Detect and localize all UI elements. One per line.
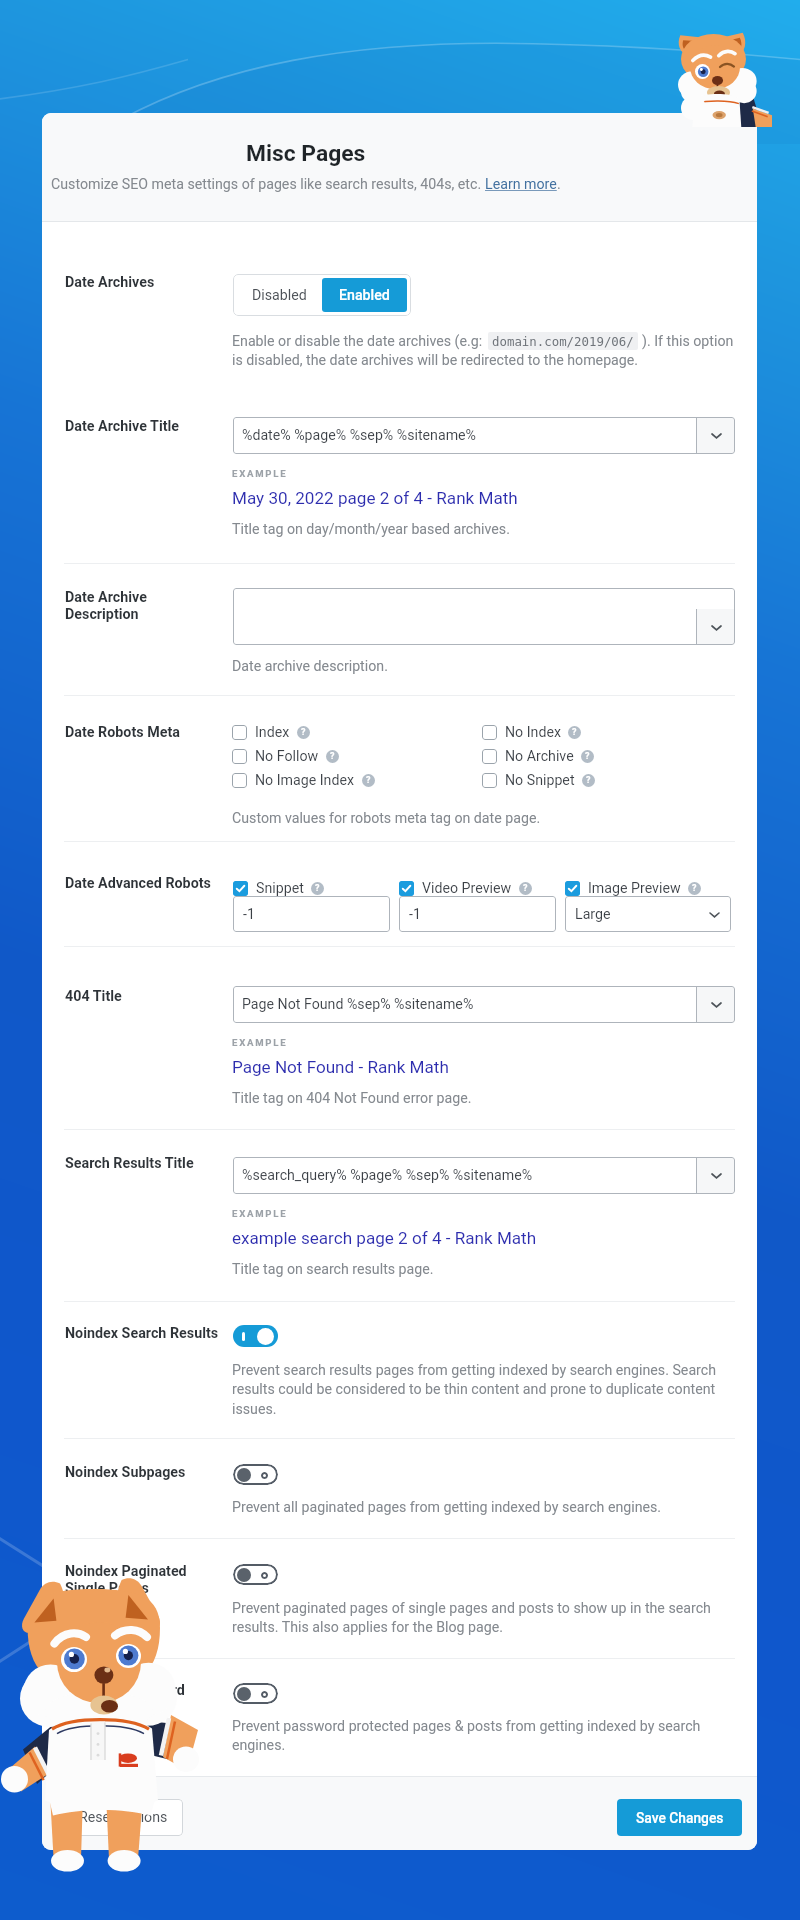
staticText: domain.com/2019/06/ xyxy=(492,334,634,348)
staticText: . xyxy=(557,176,561,193)
staticText: Date archive description. xyxy=(232,658,388,675)
staticText: ? xyxy=(585,751,590,762)
staticText: Snippet xyxy=(256,880,304,897)
staticText: ? xyxy=(523,883,528,894)
button[interactable]: %search_query% %page% %sep% %sitename% xyxy=(233,1157,735,1194)
button[interactable]: -1 xyxy=(233,896,390,932)
staticText: is disabled, the date archives will be r… xyxy=(232,352,639,369)
staticText: Reset Options xyxy=(79,1809,168,1826)
staticText: Title tag on 404 Not Found error page. xyxy=(232,1090,472,1107)
staticText: Customize SEO meta settings of pages lik… xyxy=(51,176,485,193)
staticText: Index xyxy=(255,724,290,741)
button[interactable]: No Snippet xyxy=(482,768,595,792)
staticText: ? xyxy=(366,775,371,786)
staticText: Title tag on search results page. xyxy=(232,1261,434,1278)
button[interactable]: No Index xyxy=(482,720,581,744)
staticText: ? xyxy=(572,727,577,738)
staticText: ? xyxy=(586,775,591,786)
button[interactable]: Snippet xyxy=(233,876,324,900)
staticText: example search page 2 of 4 - Rank Math xyxy=(232,1228,537,1248)
staticText: ? xyxy=(692,883,697,894)
staticText: Noindex Paginated Single Pages xyxy=(65,1563,187,1597)
staticText: Prevent search results pages from gettin… xyxy=(232,1362,717,1418)
button[interactable]: No Image Index xyxy=(232,768,375,792)
staticText: No Follow xyxy=(255,748,319,765)
staticText: Date Archives xyxy=(65,274,155,291)
button[interactable]: No Archive xyxy=(482,744,594,768)
staticText: Enabled xyxy=(339,287,390,304)
staticText: Date Archive Title xyxy=(65,418,180,435)
button[interactable]: Save Changes xyxy=(617,1799,742,1836)
button[interactable]: Disabled xyxy=(237,278,322,312)
staticText: -1 xyxy=(243,906,255,923)
staticText: No Snippet xyxy=(505,772,575,789)
staticText: ? xyxy=(301,727,306,738)
button[interactable]: %date% %page% %sep% %sitename% xyxy=(233,417,735,454)
staticText: Page Not Found - Rank Math xyxy=(232,1057,449,1077)
staticText: Date Robots Meta xyxy=(65,724,180,741)
button[interactable]: Image Preview xyxy=(565,876,701,900)
staticText: No Image Index xyxy=(255,772,355,789)
staticText: EXAMPLE xyxy=(232,1208,288,1219)
button[interactable]: Noindex Search Results, enabled xyxy=(233,1325,278,1347)
button[interactable]: No Follow xyxy=(232,744,339,768)
staticText: Prevent paginated pages of single pages … xyxy=(232,1600,711,1636)
staticText: Custom values for robots meta tag on dat… xyxy=(232,810,541,827)
staticText: Save Changes xyxy=(636,1810,724,1826)
staticText: No Index xyxy=(505,724,561,741)
staticText: No Archive xyxy=(505,748,574,765)
button[interactable]: Page Not Found %sep% %sitename% xyxy=(233,986,735,1023)
button[interactable]: Large xyxy=(565,896,731,932)
button[interactable]: Index xyxy=(232,720,310,744)
staticText: Prevent password protected pages & posts… xyxy=(232,1718,701,1754)
staticText: Noindex Search Results xyxy=(65,1325,219,1342)
staticText: Noindex Subpages xyxy=(65,1464,186,1481)
staticText: Search Results Title xyxy=(65,1155,194,1172)
staticText: Noindex Password Protected Pages xyxy=(65,1682,185,1716)
staticText: Video Preview xyxy=(422,880,512,897)
staticText: EXAMPLE xyxy=(232,468,288,479)
staticText: ? xyxy=(315,883,320,894)
staticText: Enable or disable the date archives (e.g… xyxy=(232,333,483,350)
staticText: Page Not Found %sep% %sitename% xyxy=(242,996,474,1013)
staticText: Date Advanced Robots xyxy=(65,875,211,892)
staticText: %search_query% %page% %sep% %sitename% xyxy=(242,1167,533,1184)
staticText: Disabled xyxy=(252,287,307,304)
staticText: Misc Pages xyxy=(246,140,366,167)
button[interactable]: Noindex Subpages, disabled xyxy=(233,1464,278,1485)
staticText: 404 Title xyxy=(65,988,122,1005)
staticText: %date% %page% %sep% %sitename% xyxy=(242,427,477,444)
button[interactable]: -1 xyxy=(399,896,556,932)
staticText: Image Preview xyxy=(588,880,681,897)
staticText: Prevent all paginated pages from getting… xyxy=(232,1499,662,1516)
staticText: -1 xyxy=(409,906,421,923)
button[interactable]: Date archive description field xyxy=(233,588,735,645)
button[interactable]: Noindex Password Protected Pages, disabl… xyxy=(233,1683,278,1704)
staticText: May 30, 2022 page 2 of 4 - Rank Math xyxy=(232,488,518,508)
staticText: Large xyxy=(575,906,611,923)
button[interactable]: Reset Options xyxy=(64,1799,183,1836)
button[interactable]: Enabled xyxy=(322,278,407,312)
staticText: ). If this option xyxy=(642,333,734,350)
staticText: Title tag on day/month/year based archiv… xyxy=(232,521,510,538)
button[interactable]: Noindex Paginated Single Pages, disabled xyxy=(233,1564,278,1585)
staticText: EXAMPLE xyxy=(232,1037,288,1048)
staticText: ? xyxy=(330,751,335,762)
button[interactable]: Video Preview xyxy=(399,876,532,900)
button[interactable]: Learn more xyxy=(485,176,557,193)
staticText: Date Archive Description xyxy=(65,589,147,623)
